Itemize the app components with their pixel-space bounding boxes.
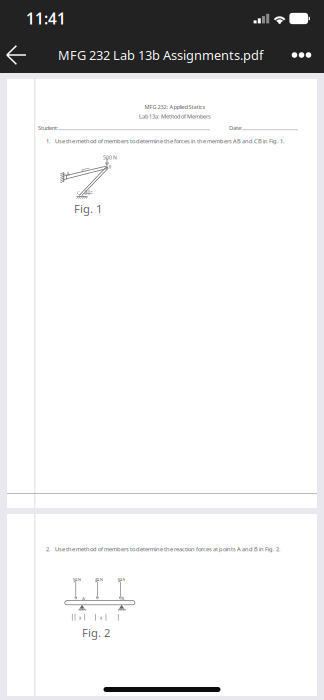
staticText: 60 N [117, 576, 125, 582]
staticText: C [77, 190, 80, 196]
button[interactable]: Back [0, 37, 32, 73]
staticText: Student: [38, 124, 59, 132]
staticText: Lab 13a: Method of Members [139, 113, 211, 120]
staticText: B [122, 595, 125, 601]
staticText: A [67, 171, 70, 177]
staticText: 40 N [95, 576, 103, 582]
staticText: 30° [84, 189, 92, 196]
staticText: Date: [229, 124, 243, 132]
staticText: 2. Use the method of members to determin… [46, 545, 281, 553]
staticText: Fig. 2 [82, 625, 110, 640]
staticText: 50 N [73, 576, 81, 582]
staticText: B [109, 164, 112, 169]
staticText: A [82, 595, 85, 601]
button[interactable]: More options [279, 37, 324, 73]
staticText: 1. Use the method of members to determin… [46, 137, 285, 145]
staticText: MFG 232 Lab 13b Assignments.pdf [58, 46, 263, 64]
staticText: MFG 232: Applied Statics [144, 103, 205, 111]
staticText: Fig. 1 [74, 201, 102, 216]
staticText: x [100, 615, 102, 621]
staticText: 500 N [103, 154, 117, 161]
staticText: x [79, 615, 81, 621]
staticText: 11:41 [26, 8, 66, 29]
